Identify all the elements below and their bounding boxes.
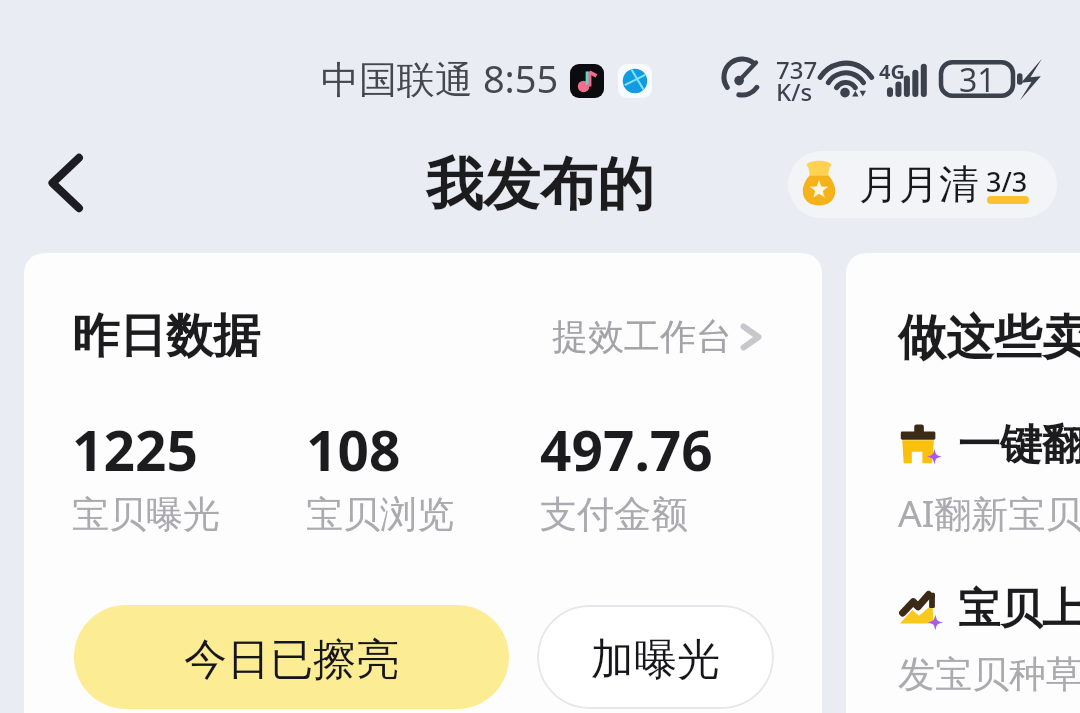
staticText: 108 — [306, 412, 401, 487]
button[interactable]: 加曝光 — [537, 605, 774, 709]
staticText: 4G — [879, 58, 905, 85]
button[interactable]: Back — [30, 149, 98, 217]
staticText: 月月清 — [859, 159, 979, 209]
staticText: 支付金额 — [540, 491, 688, 538]
staticText: 31 — [959, 58, 996, 100]
staticText: 做这些卖得快 — [898, 308, 1080, 368]
staticText: 宝贝上新 — [958, 583, 1080, 636]
staticText: K/s — [776, 75, 813, 108]
staticText: 加曝光 — [591, 633, 720, 687]
staticText: 1225 — [72, 412, 198, 487]
staticText: 我发布的 — [0, 149, 1080, 221]
button[interactable]: 今日已擦亮 — [74, 605, 509, 709]
staticText: 今日已擦亮 — [184, 633, 399, 687]
staticText: 宝贝浏览 — [306, 491, 454, 538]
staticText: AI翻新宝贝,提高成交 — [898, 487, 1080, 538]
staticText: 497.76 — [540, 412, 713, 487]
staticText: 3/3 — [986, 163, 1028, 200]
staticText: 一键翻新 — [958, 419, 1080, 472]
staticText: 提效工作台 — [552, 314, 732, 359]
staticText: 宝贝曝光 — [72, 491, 220, 538]
staticText: 发宝贝种草吸引买家 — [898, 651, 1080, 698]
staticText: 737 — [776, 53, 818, 86]
button[interactable]: 提效工作台 — [552, 314, 768, 359]
staticText: 中国联通 8:55 — [321, 52, 559, 104]
staticText: 昨日数据 — [72, 307, 260, 366]
button[interactable]: 月月清 — [788, 151, 1057, 218]
